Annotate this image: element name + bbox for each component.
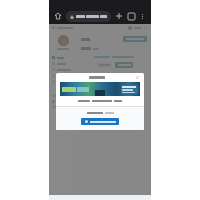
button[interactable]: Tabs: [126, 11, 136, 21]
button[interactable]: [115, 62, 133, 68]
button[interactable]: [96, 62, 112, 68]
button[interactable]: [52, 55, 74, 60]
button[interactable]: New tab: [114, 11, 124, 21]
button[interactable]: More options: [138, 12, 147, 21]
button[interactable]: [81, 118, 119, 125]
button[interactable]: [52, 79, 74, 84]
button[interactable]: [52, 73, 74, 78]
button[interactable]: [123, 36, 147, 42]
button[interactable]: Home: [53, 11, 63, 21]
button[interactable]: Close: [135, 75, 140, 80]
button[interactable]: [66, 11, 111, 22]
button[interactable]: [52, 67, 74, 72]
button[interactable]: [52, 61, 74, 66]
button[interactable]: [52, 100, 68, 103]
